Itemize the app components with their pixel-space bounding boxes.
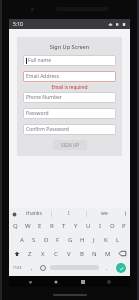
button[interactable]: K xyxy=(100,233,112,246)
button[interactable]: Phone Number xyxy=(23,92,116,103)
staticText: U xyxy=(86,222,91,230)
staticText: C xyxy=(54,250,58,258)
button[interactable]: N xyxy=(88,247,101,260)
staticText: Sign Up Screen xyxy=(23,43,116,50)
staticText: X xyxy=(41,250,45,258)
button[interactable]: Password xyxy=(23,108,116,119)
button[interactable]: Back xyxy=(25,277,35,287)
button[interactable]: Google Assistant xyxy=(11,211,17,217)
staticText: Password xyxy=(26,110,49,117)
staticText: Z xyxy=(28,250,32,258)
button[interactable]: Emoji xyxy=(37,261,48,274)
button[interactable]: ?123 xyxy=(9,261,26,274)
staticText: H xyxy=(80,236,85,244)
button[interactable]: Hide keyboard xyxy=(104,277,114,287)
staticText: S xyxy=(32,236,36,244)
staticText: . xyxy=(106,264,108,272)
staticText: 5:10 xyxy=(13,21,23,28)
staticText: R xyxy=(50,222,54,230)
staticText: Confirm Password xyxy=(26,126,69,133)
staticText: W xyxy=(25,222,31,230)
button[interactable]: J xyxy=(88,233,100,246)
button[interactable]: I xyxy=(52,208,86,219)
button[interactable]: More options xyxy=(121,208,130,219)
staticText: thanks xyxy=(26,210,42,217)
button[interactable]: Email Address xyxy=(23,71,116,82)
button[interactable]: SIGN UP xyxy=(53,140,87,150)
staticText: Email Address xyxy=(26,73,60,80)
button[interactable]: D xyxy=(40,233,52,246)
staticText: N xyxy=(92,250,97,258)
staticText: I xyxy=(68,210,70,217)
button[interactable]: T xyxy=(58,219,70,232)
staticText: I xyxy=(99,222,102,230)
button[interactable]: . xyxy=(101,261,112,274)
button[interactable]: , xyxy=(26,261,37,274)
button[interactable]: Backspace xyxy=(114,247,130,260)
button[interactable]: Confirm Password xyxy=(23,124,116,135)
button[interactable]: H xyxy=(76,233,88,246)
staticText: B xyxy=(80,250,84,258)
button[interactable]: F xyxy=(52,233,64,246)
button[interactable]: B xyxy=(75,247,88,260)
staticText: Q xyxy=(13,222,18,230)
staticText: K xyxy=(104,236,108,244)
button[interactable]: I xyxy=(94,219,106,232)
button[interactable]: Recents xyxy=(78,277,88,287)
staticText: , xyxy=(31,264,33,272)
button[interactable]: O xyxy=(106,219,118,232)
button[interactable]: Home xyxy=(51,277,61,287)
staticText: A xyxy=(20,236,24,244)
button[interactable]: R xyxy=(46,219,58,232)
button[interactable]: V xyxy=(62,247,75,260)
button[interactable]: C xyxy=(49,247,62,260)
button[interactable]: A xyxy=(16,233,28,246)
button[interactable]: S xyxy=(28,233,40,246)
staticText: Y xyxy=(74,222,78,230)
staticText: we xyxy=(101,210,108,217)
staticText: SIGN UP xyxy=(61,142,80,148)
button[interactable]: Full name xyxy=(23,55,116,66)
staticText: Full name xyxy=(28,57,51,64)
staticText: P xyxy=(122,222,126,230)
staticText: O xyxy=(110,222,115,230)
staticText: D xyxy=(44,236,49,244)
staticText: T xyxy=(62,222,66,230)
staticText: V xyxy=(67,250,71,258)
button[interactable]: W xyxy=(22,219,34,232)
staticText: ?123 xyxy=(13,265,22,270)
staticText: G xyxy=(68,236,73,244)
button[interactable]: P xyxy=(118,219,130,232)
button[interactable]: U xyxy=(82,219,94,232)
staticText: Email is required xyxy=(23,84,116,90)
button[interactable]: Enter xyxy=(112,261,130,274)
button[interactable]: L xyxy=(112,233,124,246)
button[interactable]: Q xyxy=(9,219,22,232)
button[interactable]: Shift xyxy=(9,247,24,260)
button[interactable]: M xyxy=(101,247,114,260)
button[interactable]: we xyxy=(87,208,121,219)
button[interactable]: Y xyxy=(70,219,82,232)
staticText: J xyxy=(93,236,95,244)
staticText: Phone Number xyxy=(26,94,62,101)
staticText: M xyxy=(105,250,111,258)
button[interactable]: E xyxy=(34,219,46,232)
button[interactable]: G xyxy=(64,233,76,246)
staticText: L xyxy=(116,236,120,244)
button[interactable]: thanks xyxy=(17,208,51,219)
staticText: F xyxy=(56,236,60,244)
button[interactable]: Z xyxy=(24,247,36,260)
staticText: E xyxy=(38,222,42,230)
button[interactable]: X xyxy=(36,247,49,260)
